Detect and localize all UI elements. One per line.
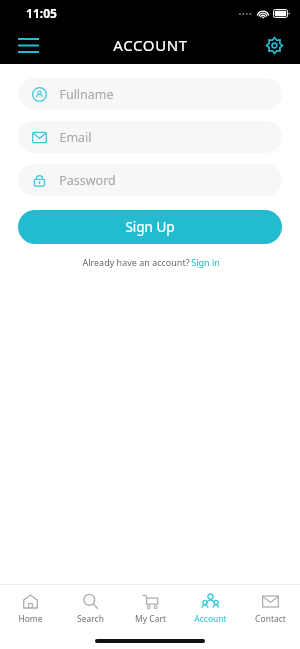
button[interactable]: Contact [240,593,300,625]
staticText: 11:05 [26,5,57,21]
staticText: ACCOUNT [113,35,188,55]
button[interactable]: Home [0,593,60,625]
button[interactable]: Search [60,593,120,625]
staticText: Already have an account? [81,256,191,268]
button[interactable]: Sign in [191,256,220,268]
staticText: Contact [255,613,286,625]
staticText: Sign Up [125,218,175,236]
staticText: Email [59,129,92,146]
button[interactable]: My Cart [120,593,180,625]
button[interactable]: Account [180,593,240,625]
button[interactable]: Email [18,121,282,153]
staticText: Password [59,172,116,189]
button[interactable]: Password [18,164,282,196]
button[interactable]: Menu [8,26,48,64]
staticText: Home [18,613,43,625]
staticText: Search [77,613,104,625]
staticText: Account [194,613,227,625]
staticText: My Cart [135,613,166,625]
staticText: Fullname [59,86,114,103]
button[interactable]: Settings [254,26,294,64]
button[interactable]: Sign Up [18,210,282,244]
staticText: Sign in [191,256,220,268]
button[interactable]: Fullname [18,78,282,110]
